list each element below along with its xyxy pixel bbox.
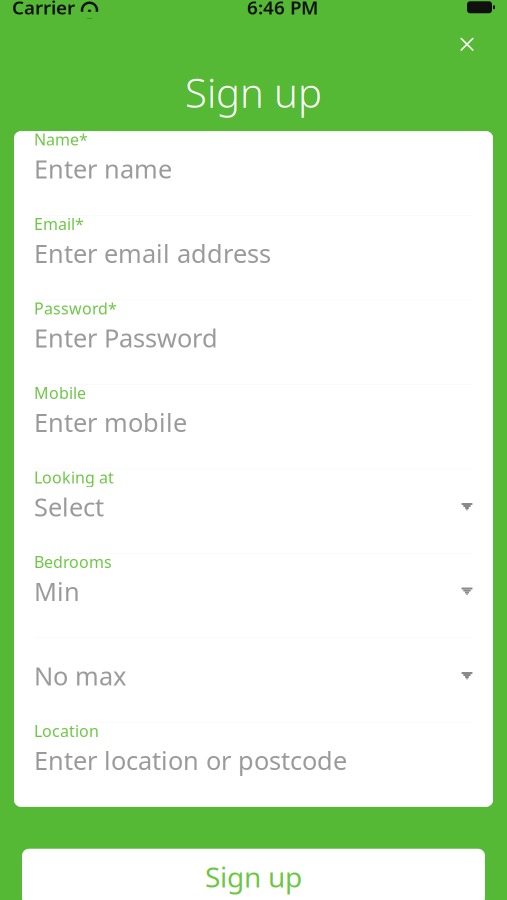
staticText: Sign up	[205, 858, 302, 895]
button[interactable]: Location	[14, 723, 493, 807]
button[interactable]: Password*	[14, 300, 493, 384]
staticText: Enter location or postcode	[34, 743, 347, 777]
staticText: No max	[34, 659, 126, 692]
staticText: Sign up	[185, 66, 322, 119]
staticText: Bedrooms	[34, 551, 112, 572]
staticText: Mobile	[34, 382, 86, 403]
button[interactable]: No max	[14, 638, 493, 722]
staticText: Email*	[34, 213, 84, 234]
staticText: Carrier	[12, 0, 75, 20]
button[interactable]: Mobile	[14, 385, 493, 469]
staticText: Name*	[34, 129, 88, 150]
button[interactable]: Email*	[14, 216, 493, 300]
button[interactable]: Name*	[14, 131, 493, 215]
staticText: Looking at	[34, 467, 114, 488]
button[interactable]: Close	[445, 22, 489, 66]
staticText: Enter name	[34, 152, 172, 185]
staticText: Password*	[34, 298, 117, 319]
button[interactable]: Sign up	[22, 849, 485, 900]
staticText: Select	[34, 490, 104, 523]
staticText: 6:46 PM	[247, 0, 318, 20]
staticText: Min	[34, 574, 80, 608]
button[interactable]: Bedrooms	[14, 554, 493, 638]
staticText: Enter mobile	[34, 405, 187, 439]
staticText: Location	[34, 720, 99, 741]
staticText: Enter Password	[34, 321, 218, 354]
button[interactable]: Looking at	[14, 469, 493, 553]
staticText: Enter email address	[34, 236, 271, 270]
